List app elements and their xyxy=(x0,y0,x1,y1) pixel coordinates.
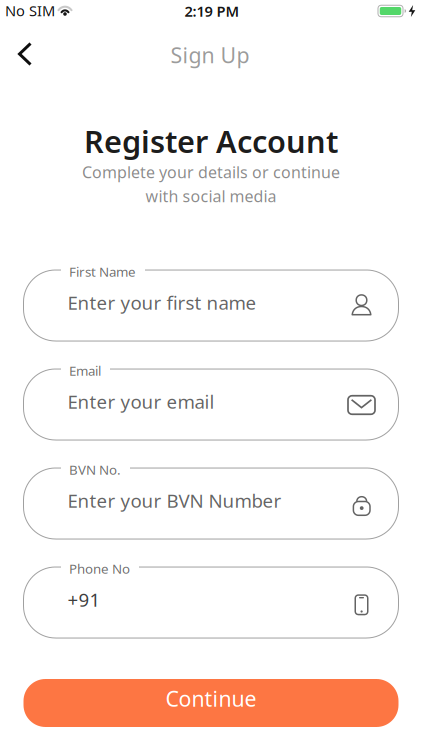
staticText: Register Account xyxy=(84,121,338,161)
button[interactable]: +91 xyxy=(23,567,398,638)
staticText: Phone No xyxy=(69,560,130,577)
staticText: 2:19 PM xyxy=(184,1,239,21)
staticText: No SIM xyxy=(5,1,55,20)
staticText: +91 xyxy=(67,587,100,612)
staticText: Enter your email xyxy=(67,389,214,414)
staticText: BVN No. xyxy=(69,461,121,478)
staticText: First Name xyxy=(69,263,136,280)
button[interactable]: Enter your email xyxy=(23,369,398,440)
button[interactable]: Back xyxy=(3,32,47,76)
button[interactable]: Enter your first name xyxy=(23,270,398,341)
staticText: Enter your first name xyxy=(67,290,256,315)
button[interactable]: Enter your BVN Number xyxy=(23,468,398,539)
staticText: Sign Up xyxy=(170,41,249,69)
button[interactable]: Continue xyxy=(23,679,398,727)
staticText: Email xyxy=(69,362,101,379)
staticText: with social media xyxy=(145,185,276,207)
staticText: Complete your details or continue xyxy=(82,161,340,183)
staticText: Enter your BVN Number xyxy=(67,488,281,513)
staticText: Continue xyxy=(165,684,256,713)
